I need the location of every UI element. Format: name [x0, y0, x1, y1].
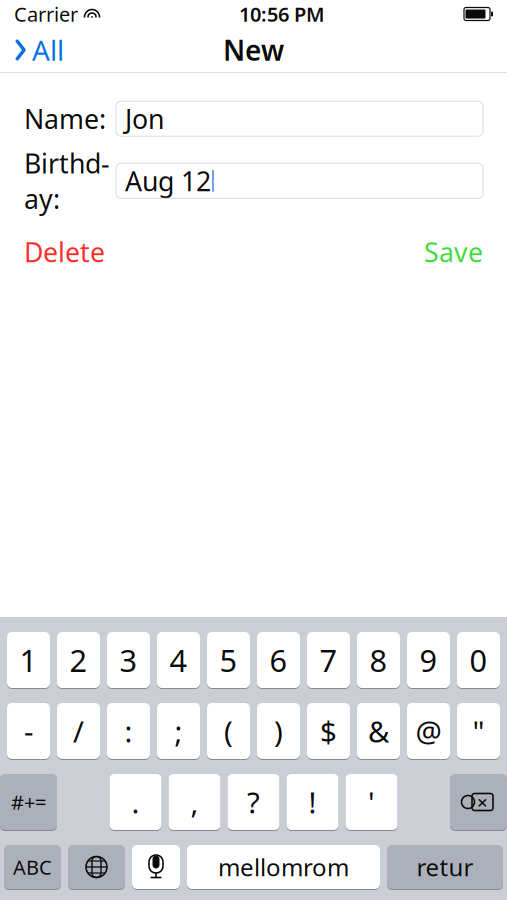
staticText: 7	[319, 640, 337, 680]
button[interactable]: 5	[207, 631, 250, 689]
staticText: 5	[219, 640, 237, 680]
staticText: New	[223, 31, 284, 69]
button[interactable]: &	[357, 702, 400, 760]
staticText: 2	[69, 640, 87, 680]
button[interactable]: 8	[357, 631, 400, 689]
staticText: :	[124, 711, 132, 750]
staticText: ABC	[13, 854, 52, 880]
staticText: ×	[477, 790, 488, 814]
button[interactable]: 0	[457, 631, 500, 689]
staticText: Delete	[24, 234, 105, 270]
button[interactable]: ?	[227, 773, 279, 831]
button[interactable]: 4	[157, 631, 200, 689]
staticText: 6	[269, 640, 287, 680]
staticText: Name:	[24, 101, 106, 136]
button[interactable]: -	[7, 702, 50, 760]
staticText: Save	[424, 234, 483, 270]
button[interactable]: @	[407, 702, 450, 760]
button[interactable]: More symbols	[0, 773, 57, 831]
staticText: (	[224, 711, 233, 750]
button[interactable]: '	[345, 773, 397, 831]
button[interactable]: space	[187, 844, 380, 890]
button[interactable]: Jon	[116, 101, 483, 136]
button[interactable]: .	[109, 773, 161, 831]
staticText: 10:56 PM	[239, 1, 325, 27]
button[interactable]: Delete	[450, 773, 507, 831]
button[interactable]: $	[307, 702, 350, 760]
staticText: )	[274, 711, 283, 750]
staticText: Aug 12	[125, 163, 211, 198]
staticText: $	[320, 711, 337, 750]
staticText: Carrier	[14, 1, 78, 27]
staticText: Jon	[125, 101, 164, 136]
staticText: "	[472, 711, 484, 750]
staticText: '	[368, 782, 375, 821]
button[interactable]: 7	[307, 631, 350, 689]
staticText: 9	[419, 640, 437, 680]
staticText: #+=	[11, 789, 46, 815]
button[interactable]: "	[457, 702, 500, 760]
button[interactable]: ;	[157, 702, 200, 760]
staticText: Birthday:	[24, 145, 110, 216]
staticText: !	[308, 782, 316, 821]
button[interactable]: Next keyboard	[68, 844, 125, 890]
staticText: 4	[169, 640, 187, 680]
staticText: retur	[416, 851, 473, 883]
button[interactable]: 3	[107, 631, 150, 689]
button[interactable]: !	[286, 773, 338, 831]
button[interactable]: Letters	[4, 844, 61, 890]
button[interactable]: 9	[407, 631, 450, 689]
button[interactable]: 1	[7, 631, 50, 689]
button[interactable]: Dictation	[132, 844, 180, 890]
button[interactable]: :	[107, 702, 150, 760]
staticText: 1	[19, 640, 37, 680]
button[interactable]: (	[207, 702, 250, 760]
staticText: ?	[247, 782, 260, 821]
staticText: mellomrom	[218, 851, 349, 883]
staticText: ,	[190, 782, 198, 821]
button[interactable]: return	[387, 844, 503, 890]
staticText: &	[368, 711, 389, 750]
button[interactable]: /	[57, 702, 100, 760]
button[interactable]: 6	[257, 631, 300, 689]
staticText: 0	[469, 640, 487, 680]
button[interactable]: ,	[168, 773, 220, 831]
staticText: ;	[174, 711, 182, 750]
button[interactable]: )	[257, 702, 300, 760]
staticText: /	[73, 711, 84, 750]
staticText: @	[415, 711, 441, 750]
staticText: 8	[369, 640, 387, 680]
button[interactable]: Aug 12	[116, 163, 483, 198]
staticText: All	[32, 31, 64, 69]
staticText: .	[131, 782, 139, 821]
staticText: -	[24, 711, 33, 750]
button[interactable]: All	[0, 28, 78, 72]
button[interactable]: 2	[57, 631, 100, 689]
staticText: 3	[119, 640, 137, 680]
button[interactable]: Delete	[24, 234, 105, 270]
button[interactable]: Save	[424, 234, 483, 270]
